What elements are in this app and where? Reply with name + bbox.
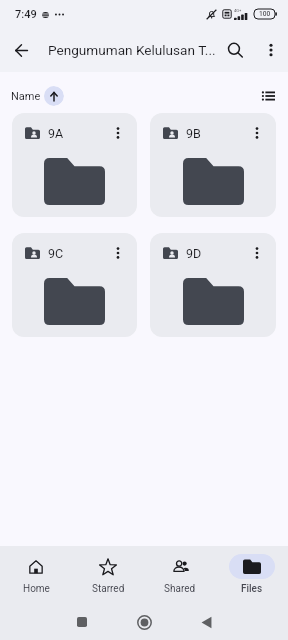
- button[interactable]: 9A: [12, 113, 137, 217]
- staticText: Files: [241, 583, 263, 595]
- staticText: Home: [23, 583, 50, 595]
- button[interactable]: Back: [189, 605, 223, 639]
- button[interactable]: Name: [11, 86, 64, 106]
- staticText: Starred: [92, 583, 125, 595]
- button[interactable]: 9D: [150, 233, 276, 337]
- staticText: Pengumuman Kelulusan T...: [48, 42, 216, 58]
- button[interactable]: Search: [216, 31, 254, 69]
- button[interactable]: List view: [250, 79, 286, 113]
- staticText: 9A: [48, 126, 64, 141]
- button[interactable]: 9B: [150, 113, 276, 217]
- staticText: 4G+: [234, 8, 242, 13]
- button[interactable]: Recent apps: [65, 605, 99, 639]
- staticText: Name: [11, 90, 41, 103]
- staticText: Shared: [164, 583, 196, 595]
- button[interactable]: Back: [0, 29, 42, 71]
- button[interactable]: 9C: [12, 233, 137, 337]
- button[interactable]: Files: [216, 552, 288, 595]
- staticText: 7:49: [15, 8, 37, 21]
- button[interactable]: Shared: [144, 552, 216, 595]
- button[interactable]: Starred: [72, 552, 144, 595]
- button[interactable]: Home: [127, 605, 161, 639]
- staticText: 9B: [186, 126, 201, 141]
- staticText: 100: [259, 10, 271, 18]
- staticText: 9C: [48, 246, 64, 261]
- button[interactable]: Home: [0, 552, 72, 595]
- button[interactable]: More options: [254, 33, 288, 67]
- staticText: 9D: [186, 246, 202, 261]
